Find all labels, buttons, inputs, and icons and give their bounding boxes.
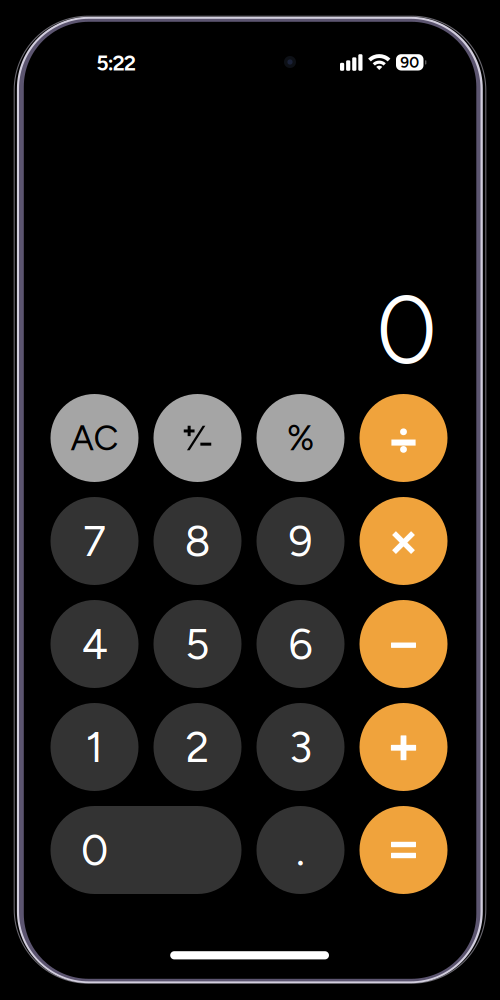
- staticText: 90: [400, 53, 419, 72]
- staticText: 1: [85, 721, 103, 773]
- button[interactable]: 4: [50, 600, 138, 688]
- staticText: 6: [288, 618, 312, 670]
- staticText: 0: [376, 272, 437, 387]
- staticText: %: [287, 417, 314, 459]
- button[interactable]: Equals: [359, 806, 447, 894]
- button[interactable]: .: [256, 806, 344, 894]
- button[interactable]: 8: [153, 497, 241, 585]
- button[interactable]: %: [256, 394, 344, 482]
- staticText: 4: [81, 618, 107, 670]
- staticText: 7: [83, 515, 106, 567]
- button[interactable]: 1: [50, 703, 138, 791]
- staticText: AC: [70, 417, 118, 459]
- staticText: 3: [289, 721, 312, 773]
- button[interactable]: 7: [50, 497, 138, 585]
- button[interactable]: 6: [256, 600, 344, 688]
- staticText: 0: [81, 824, 108, 876]
- staticText: 5: [185, 618, 210, 670]
- button[interactable]: 5: [153, 600, 241, 688]
- button[interactable]: Divide: [359, 394, 447, 482]
- button[interactable]: Plus minus: [153, 394, 241, 482]
- button[interactable]: 2: [153, 703, 241, 791]
- button[interactable]: Multiply: [359, 497, 447, 585]
- button[interactable]: 9: [256, 497, 344, 585]
- staticText: 8: [184, 515, 210, 567]
- staticText: 9: [288, 515, 312, 567]
- staticText: 5:22: [96, 50, 136, 76]
- button[interactable]: 3: [256, 703, 344, 791]
- staticText: 2: [185, 721, 209, 773]
- staticText: .: [296, 824, 305, 876]
- button[interactable]: AC: [50, 394, 138, 482]
- button[interactable]: 0: [50, 806, 241, 894]
- button[interactable]: Add: [359, 703, 447, 791]
- button[interactable]: Subtract: [359, 600, 447, 688]
